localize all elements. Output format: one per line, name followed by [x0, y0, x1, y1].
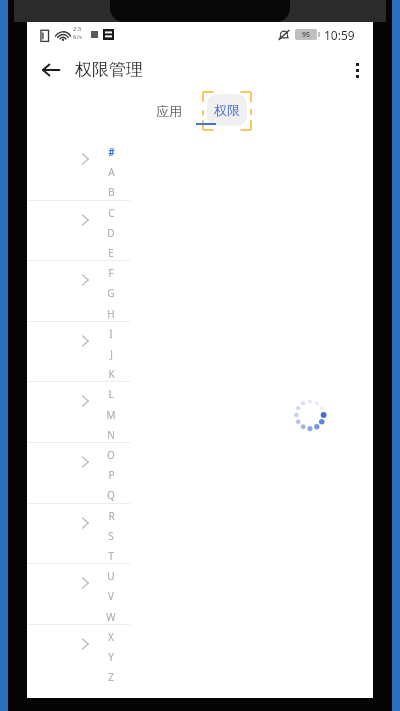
staticText: I: [109, 327, 113, 341]
staticText: V: [108, 589, 114, 603]
staticText: T: [108, 549, 114, 563]
staticText: K/s: [73, 33, 82, 41]
staticText: B: [108, 185, 115, 199]
staticText: S: [108, 529, 114, 543]
button[interactable]: Back: [35, 54, 67, 86]
button[interactable]: R: [103, 509, 119, 527]
staticText: Z: [108, 670, 114, 684]
button[interactable]: N: [103, 428, 119, 446]
button[interactable]: L: [103, 387, 119, 405]
button[interactable]: X: [103, 630, 119, 648]
staticText: O: [107, 448, 115, 462]
staticText: K: [108, 367, 115, 381]
staticText: X: [108, 630, 114, 644]
staticText: M: [106, 408, 116, 422]
button[interactable]: P: [103, 468, 119, 486]
staticText: 权限管理: [75, 59, 143, 80]
button[interactable]: B: [103, 185, 119, 203]
button[interactable]: E: [103, 246, 119, 264]
button[interactable]: F: [103, 266, 119, 284]
staticText: W: [106, 610, 116, 624]
button[interactable]: K: [103, 367, 119, 385]
button[interactable]: V: [103, 589, 119, 607]
button[interactable]: T: [103, 549, 119, 567]
button[interactable]: H: [103, 307, 119, 325]
button[interactable]: I: [103, 327, 119, 345]
button[interactable]: 权限: [203, 92, 251, 130]
button[interactable]: Z: [103, 670, 119, 688]
staticText: C: [108, 206, 115, 220]
staticText: E: [108, 246, 114, 260]
staticText: 应用: [156, 103, 182, 119]
staticText: F: [108, 266, 114, 280]
button[interactable]: #: [103, 145, 119, 163]
button[interactable]: A: [103, 165, 119, 183]
staticText: G: [107, 286, 115, 300]
staticText: R: [108, 509, 115, 523]
staticText: Y: [108, 650, 114, 664]
staticText: D: [107, 226, 115, 240]
staticText: N: [107, 428, 115, 442]
button[interactable]: J: [103, 347, 119, 365]
staticText: J: [110, 347, 113, 361]
staticText: 10:59: [324, 27, 355, 43]
staticText: Q: [107, 488, 115, 502]
staticText: L: [108, 387, 114, 401]
staticText: P: [108, 468, 115, 482]
button[interactable]: C: [103, 206, 119, 224]
button[interactable]: Y: [103, 650, 119, 668]
button[interactable]: O: [103, 448, 119, 466]
button[interactable]: More options: [341, 54, 373, 86]
staticText: 95: [302, 30, 311, 40]
button[interactable]: D: [103, 226, 119, 244]
staticText: 权限: [214, 102, 240, 118]
button[interactable]: G: [103, 286, 119, 304]
button[interactable]: S: [103, 529, 119, 547]
staticText: 2.5: [73, 25, 82, 33]
staticText: H: [107, 307, 115, 321]
button[interactable]: M: [103, 408, 119, 426]
button[interactable]: 应用: [147, 96, 191, 126]
button[interactable]: Q: [103, 488, 119, 506]
button[interactable]: W: [103, 610, 119, 628]
staticText: #: [108, 145, 115, 159]
button[interactable]: U: [103, 569, 119, 587]
staticText: A: [108, 165, 115, 179]
staticText: U: [107, 569, 115, 583]
